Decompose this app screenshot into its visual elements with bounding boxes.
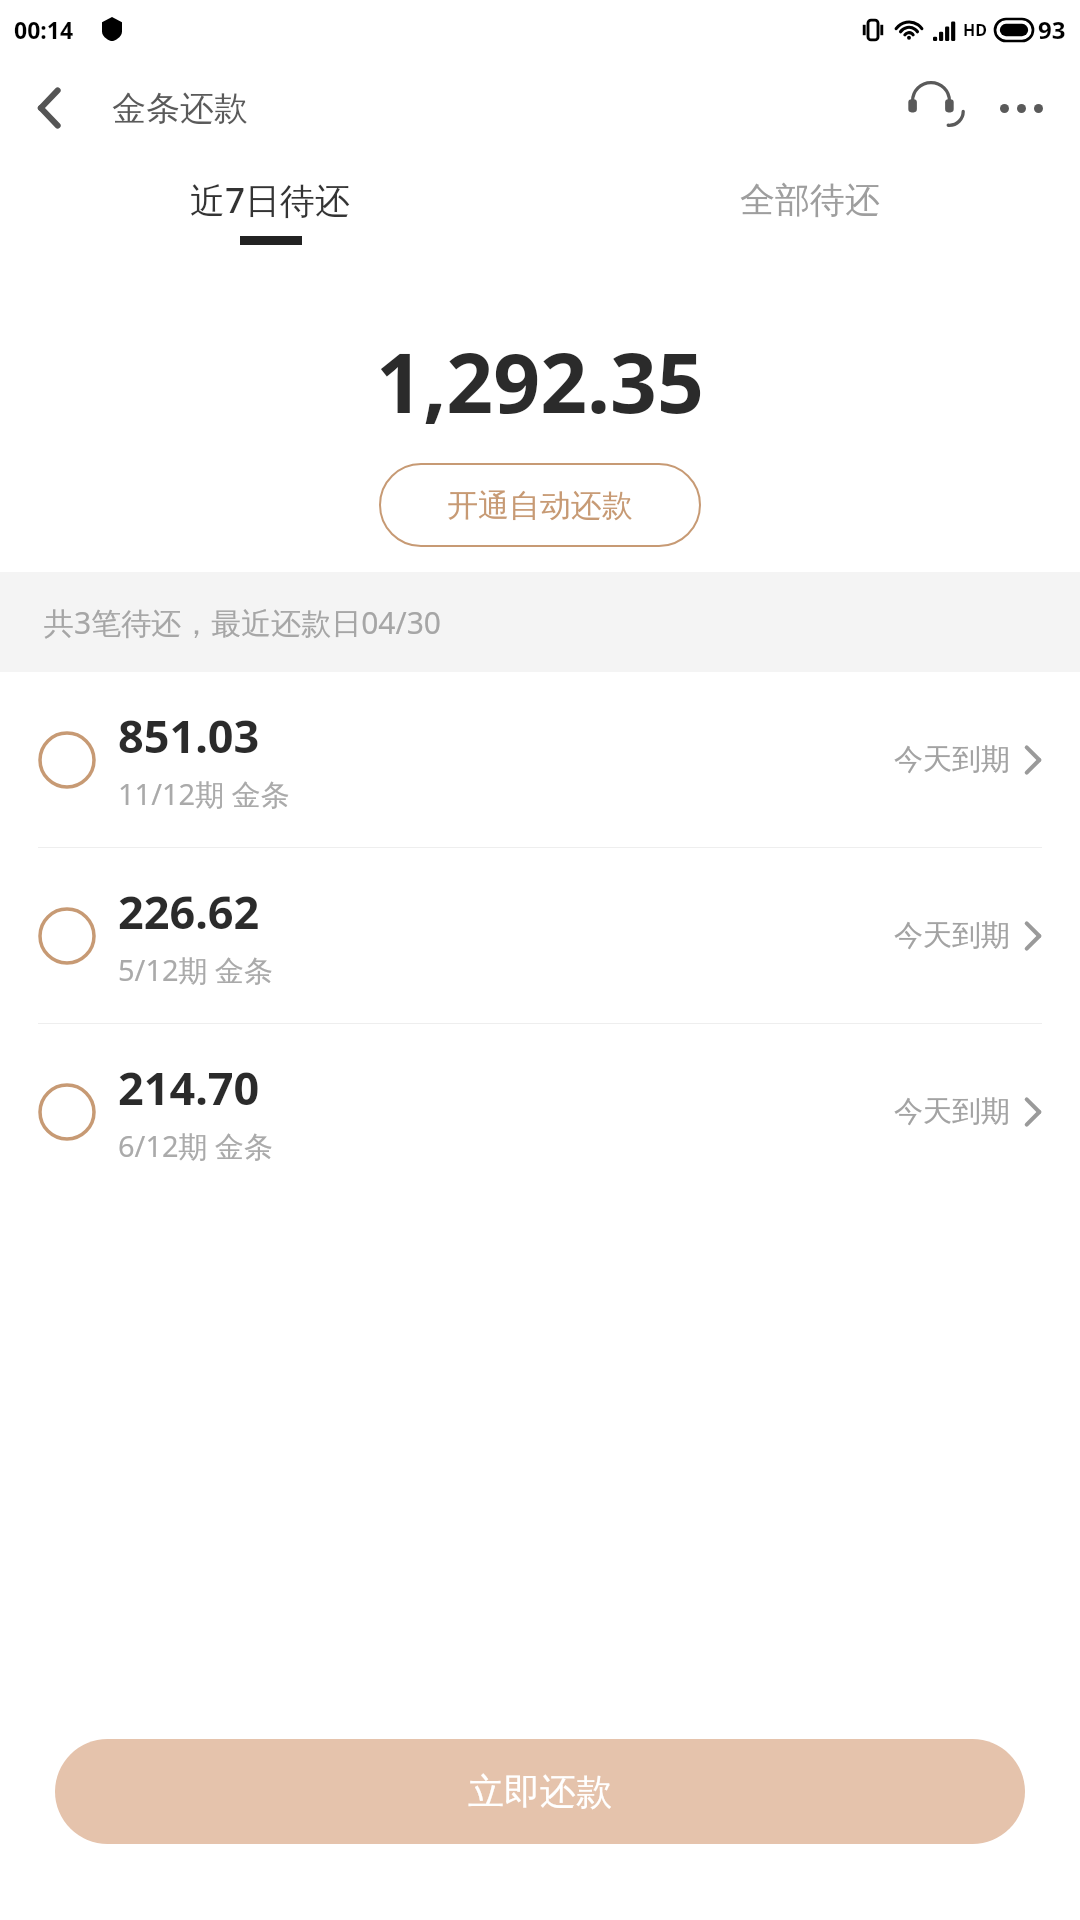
staticText: 全部待还	[740, 178, 880, 222]
button[interactable]: 全部待还	[540, 158, 1080, 263]
staticText: 今天到期	[894, 1093, 1010, 1130]
staticText: 金条还款	[112, 87, 248, 130]
staticText: 851.03	[118, 705, 260, 766]
staticText: 00:14	[14, 14, 74, 45]
staticText: 近7日待还	[190, 176, 351, 224]
staticText: 5/12期 金条	[118, 950, 274, 990]
button[interactable]: 近7日待还	[0, 158, 540, 263]
staticText: 立即还款	[468, 1769, 612, 1814]
staticText: 共3笔待还，最近还款日04/30	[44, 602, 441, 643]
button[interactable]: 226.62	[0, 848, 1080, 1023]
staticText: 11/12期 金条	[118, 774, 290, 814]
staticText: 6/12期 金条	[118, 1126, 274, 1166]
staticText: 214.70	[118, 1057, 260, 1118]
button[interactable]: 立即还款	[55, 1739, 1025, 1844]
button[interactable]: Back	[22, 80, 78, 136]
staticText: HD	[963, 19, 987, 41]
button[interactable]: 开通自动还款	[379, 463, 701, 547]
staticText: 1,292.35	[376, 325, 704, 437]
staticText: 今天到期	[894, 917, 1010, 954]
staticText: 今天到期	[894, 741, 1010, 778]
button[interactable]: 客服	[896, 73, 966, 143]
staticText: 开通自动还款	[447, 486, 633, 525]
staticText: 226.62	[118, 881, 260, 942]
button[interactable]: 851.03	[0, 672, 1080, 847]
button[interactable]: 214.70	[0, 1024, 1080, 1199]
button[interactable]: More options	[988, 75, 1054, 141]
staticText: 93	[1038, 13, 1066, 46]
